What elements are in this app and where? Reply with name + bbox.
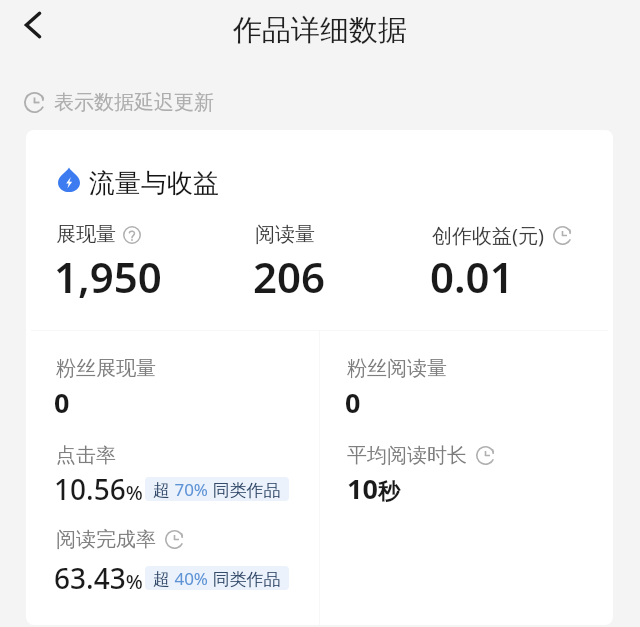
staticText: 阅读量 <box>255 222 315 247</box>
staticText: 表示数据延迟更新 <box>54 90 214 115</box>
staticText: 10.56% <box>54 470 142 508</box>
staticText: 流量与收益 <box>89 167 219 200</box>
button[interactable]: Back <box>10 2 56 48</box>
staticText: 0 <box>54 384 70 421</box>
staticText: 粉丝展现量 <box>56 356 156 381</box>
staticText: 点击率 <box>56 443 116 468</box>
staticText: 超 40% 同类作品 <box>153 567 281 590</box>
staticText: 1,950 <box>54 248 162 305</box>
staticText: 作品详细数据 <box>0 12 640 49</box>
staticText: 10秒 <box>347 470 400 507</box>
staticText: 创作收益(元) <box>432 222 544 249</box>
staticText: 0.01 <box>430 248 514 305</box>
staticText: 粉丝阅读量 <box>347 356 447 381</box>
staticText: 阅读完成率 <box>56 527 156 552</box>
staticText: 63.43% <box>54 559 142 597</box>
staticText: 0 <box>345 384 361 421</box>
staticText: 206 <box>253 248 326 305</box>
staticText: 超 70% 同类作品 <box>153 478 281 501</box>
staticText: 平均阅读时长 <box>347 443 467 468</box>
staticText: 展现量 <box>56 222 116 247</box>
